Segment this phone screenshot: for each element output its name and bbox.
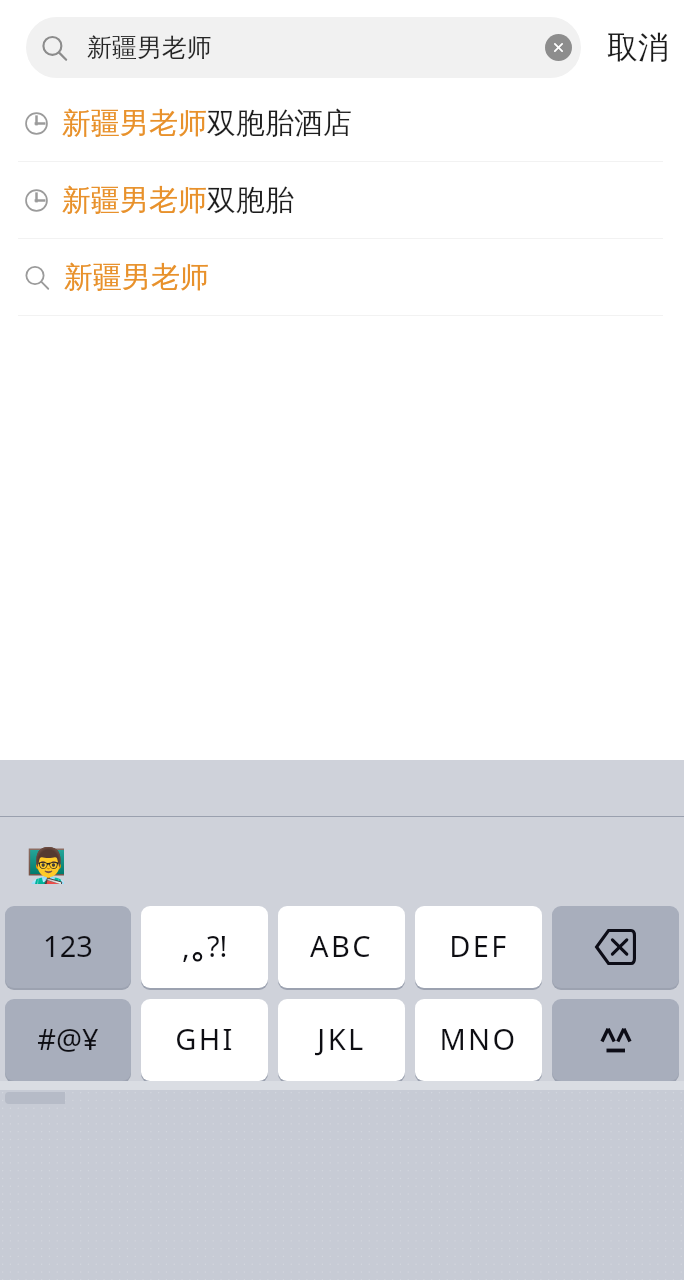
button[interactable]: 123: [5, 906, 131, 988]
staticText: 新疆男老师: [64, 259, 209, 296]
button[interactable]: 新疆男老师: [0, 239, 684, 316]
button[interactable]: Clear text: [545, 34, 572, 61]
button[interactable]: MNO: [415, 999, 542, 1081]
button[interactable]: Emoticon: [552, 999, 679, 1081]
staticText: ?!: [207, 926, 228, 965]
button[interactable]: ,。?!: [141, 906, 268, 988]
staticText: 👨‍🏫: [26, 846, 64, 884]
button[interactable]: #@¥: [5, 999, 131, 1081]
button[interactable]: Emoji: [26, 846, 64, 884]
button[interactable]: ABC: [278, 906, 405, 988]
button[interactable]: 新疆男老师: [26, 17, 581, 78]
button[interactable]: JKL: [278, 999, 405, 1081]
button[interactable]: 新疆男老师双胞胎酒店: [0, 85, 684, 162]
staticText: JKL: [317, 1019, 366, 1058]
staticText: MNO: [439, 1019, 518, 1058]
staticText: 123: [43, 926, 93, 965]
button[interactable]: 新疆男老师双胞胎: [0, 162, 684, 239]
staticText: ,: [182, 927, 190, 966]
staticText: 新疆男老师双胞胎酒店: [62, 105, 352, 142]
button[interactable]: Backspace: [552, 906, 679, 988]
button[interactable]: GHI: [141, 999, 268, 1081]
staticText: GHI: [175, 1019, 235, 1058]
staticText: 新疆男老师双胞胎: [62, 182, 294, 219]
staticText: 新疆男老师: [87, 32, 212, 63]
button[interactable]: DEF: [415, 906, 542, 988]
button[interactable]: 取消: [597, 17, 678, 78]
staticText: #@¥: [37, 1019, 99, 1058]
staticText: DEF: [449, 926, 509, 965]
staticText: ABC: [310, 926, 373, 965]
staticText: 取消: [607, 28, 669, 67]
